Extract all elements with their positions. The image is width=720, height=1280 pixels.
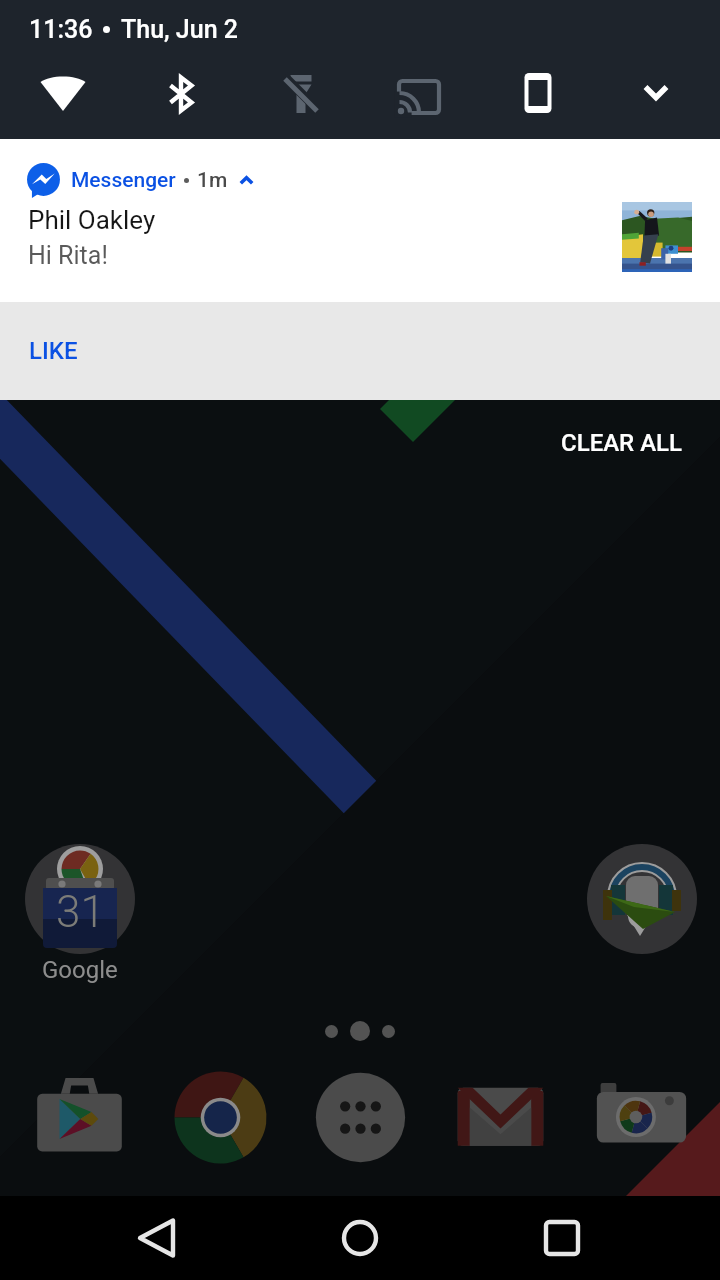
button[interactable]: Expand quick settings xyxy=(626,64,686,124)
staticText: LIKE xyxy=(29,337,78,365)
button[interactable]: Cast xyxy=(389,64,449,124)
button[interactable]: 31 xyxy=(25,844,135,984)
button[interactable]: Camera xyxy=(589,1065,693,1169)
staticText: 31 xyxy=(56,886,105,938)
staticText: Google xyxy=(42,956,118,984)
staticText: Phil Oakley xyxy=(28,205,156,235)
staticText: Messenger xyxy=(71,168,176,193)
button[interactable]: Recents xyxy=(522,1196,602,1280)
button[interactable]: Flashlight off xyxy=(271,64,331,124)
button[interactable]: Bluetooth xyxy=(151,64,211,124)
button[interactable]: CLEAR ALL xyxy=(547,421,697,465)
button[interactable]: Gmail xyxy=(448,1065,552,1169)
button[interactable]: Play Store xyxy=(27,1065,131,1169)
button[interactable]: Back xyxy=(117,1196,197,1280)
button[interactable]: LIKE xyxy=(0,302,105,400)
staticText: CLEAR ALL xyxy=(561,429,683,457)
staticText: 1m xyxy=(197,168,228,193)
button[interactable]: Home xyxy=(320,1196,400,1280)
button[interactable]: Display xyxy=(508,64,568,124)
button[interactable]: Music folder xyxy=(587,844,697,954)
button[interactable]: Chrome xyxy=(168,1065,272,1169)
button[interactable]: All apps xyxy=(308,1065,412,1169)
staticText: Thu, Jun 2 xyxy=(121,15,238,44)
button[interactable]: Wi-Fi xyxy=(33,64,93,124)
button[interactable]: Messenger xyxy=(0,139,720,302)
staticText: 11:36 xyxy=(29,15,93,44)
staticText: Hi Rita! xyxy=(28,241,108,270)
